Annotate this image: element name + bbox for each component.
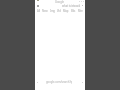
staticText: Bks (71, 9, 76, 13)
button[interactable]: Map (63, 9, 69, 13)
button[interactable]: Bks (71, 9, 76, 13)
staticText: Vid (57, 9, 61, 13)
staticText: Google (55, 0, 65, 4)
staticText: google.com/search?q (46, 80, 73, 84)
button[interactable]: New (42, 9, 48, 13)
staticText: what is jetpack (62, 4, 81, 7)
button[interactable]: Page info (35, 80, 85, 84)
button[interactable]: Mre (78, 9, 83, 13)
button[interactable]: Vid (57, 9, 61, 13)
staticText: Map (63, 9, 69, 13)
button[interactable]: Open menu (35, 4, 85, 7)
staticText: Img (50, 9, 55, 13)
staticText: New (42, 9, 48, 13)
staticText: All (37, 9, 40, 13)
button[interactable]: All (37, 9, 40, 13)
staticText: Mre (78, 9, 83, 13)
button[interactable]: Img (50, 9, 55, 13)
